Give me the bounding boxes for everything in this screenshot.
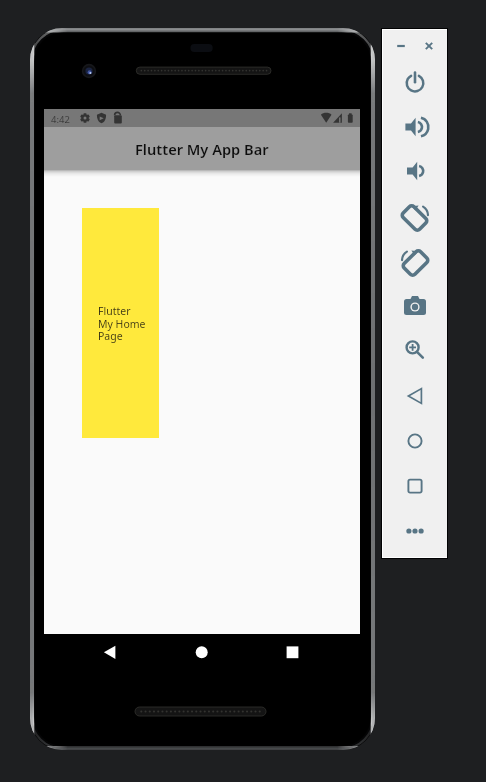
staticText: Flutter My App Bar xyxy=(135,139,269,159)
button[interactable]: Back xyxy=(96,640,124,664)
button[interactable]: More xyxy=(399,515,431,547)
button[interactable]: Minimize xyxy=(392,37,410,55)
button[interactable]: Rotate left xyxy=(399,201,431,233)
button[interactable]: Home xyxy=(188,640,216,664)
button[interactable]: Overview xyxy=(399,470,431,502)
button[interactable]: Zoom xyxy=(399,333,431,365)
button[interactable]: Flutter My App Bar xyxy=(44,127,360,170)
button[interactable]: Close xyxy=(420,37,438,55)
button[interactable]: Volume down xyxy=(399,155,431,187)
staticText: Flutter My Home Page xyxy=(98,304,146,343)
button[interactable]: Power xyxy=(399,66,431,98)
button[interactable]: Recent apps xyxy=(279,640,307,664)
button[interactable]: Home xyxy=(399,425,431,457)
button[interactable]: Screenshot xyxy=(399,290,431,322)
button[interactable]: Rotate right xyxy=(399,246,431,278)
button[interactable]: Volume up xyxy=(399,111,431,143)
staticText: 4:42 xyxy=(51,113,70,126)
button[interactable]: Flutter My Home Page xyxy=(82,208,159,438)
button[interactable]: Back xyxy=(399,380,431,412)
